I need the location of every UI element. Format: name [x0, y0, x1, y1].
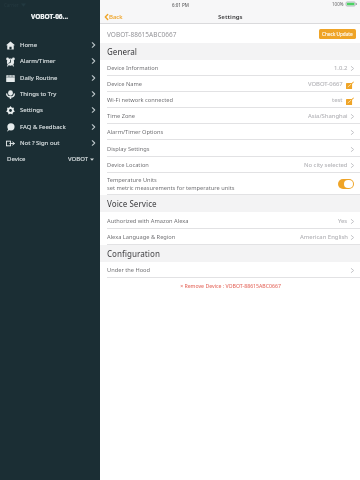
staticText: VOBOT-0667 — [308, 80, 343, 88]
button[interactable]: Device Name — [100, 76, 360, 92]
staticText: VOBOT-06... — [31, 12, 69, 21]
button[interactable]: Temperature units toggle — [338, 179, 354, 189]
staticText: Device — [7, 155, 26, 163]
staticText: Back — [109, 13, 123, 21]
staticText: Device Information — [107, 64, 159, 72]
staticText: Alarm/Timer Options — [107, 128, 164, 136]
staticText: Not ? Sign out — [20, 139, 60, 147]
staticText: Time Zone — [107, 112, 136, 120]
staticText: FAQ & Feedback — [20, 123, 66, 131]
button[interactable]: × Remove Device : VOBOT-88615ABC0667 — [100, 282, 360, 289]
staticText: Settings — [218, 13, 243, 21]
staticText: VOBOT-88615ABC0667 — [107, 30, 177, 39]
button[interactable]: Things to Try — [0, 86, 100, 102]
staticText: Device Location — [107, 161, 149, 169]
staticText: set metric measurements for temperature … — [107, 184, 235, 192]
button[interactable]: Display Settings — [100, 141, 360, 157]
staticText: Authorized with Amazon Alexa — [107, 217, 189, 225]
staticText: Alexa Language & Region — [107, 233, 176, 241]
staticText: Configuration — [107, 248, 160, 259]
staticText: Display Settings — [107, 145, 150, 153]
staticText: Voice Service — [107, 198, 157, 209]
staticText: test — [332, 96, 343, 104]
button[interactable]: Daily Routine — [0, 70, 100, 86]
staticText: No city selected — [304, 161, 348, 169]
button[interactable]: Settings — [0, 102, 100, 118]
staticText: Alarm/Timer — [20, 57, 56, 65]
staticText: Home — [20, 41, 38, 49]
button[interactable]: Home — [0, 37, 100, 53]
staticText: 100% — [332, 1, 344, 7]
staticText: Device Name — [107, 80, 143, 88]
staticText: Yes — [338, 217, 348, 225]
staticText: Temperature Units — [107, 176, 157, 184]
button[interactable]: Temperature Units — [100, 173, 360, 195]
button[interactable]: Time Zone — [100, 108, 360, 124]
button[interactable]: FAQ & Feedback — [0, 119, 100, 135]
staticText: Asia/Shanghai — [308, 112, 348, 120]
staticText: 1.0.2 — [334, 64, 348, 72]
staticText: Things to Try — [20, 90, 57, 98]
staticText: Wi-Fi network connected — [107, 96, 173, 104]
staticText: Under the Hood — [107, 266, 151, 274]
button[interactable]: Alexa Language & Region — [100, 229, 360, 245]
staticText: American English — [300, 233, 348, 241]
button[interactable]: Not ? Sign out — [0, 135, 100, 151]
staticText: Daily Routine — [20, 74, 58, 82]
button[interactable]: Device Location — [100, 157, 360, 173]
button[interactable]: Alarm/Timer Options — [100, 124, 360, 140]
button[interactable]: Wi-Fi network connected — [100, 92, 360, 108]
button[interactable]: Back — [100, 10, 127, 24]
button[interactable]: Authorized with Amazon Alexa — [100, 213, 360, 229]
button[interactable]: Under the Hood — [100, 262, 360, 278]
button[interactable]: Device — [0, 151, 100, 167]
staticText: Settings — [20, 106, 43, 114]
staticText: 6:01 PM — [172, 2, 189, 8]
staticText: VOBOT — [68, 155, 88, 163]
staticText: Check Update — [322, 31, 353, 37]
staticText: × Remove Device : VOBOT-88615ABC0667 — [180, 282, 281, 289]
button[interactable]: Alarm/Timer — [0, 53, 100, 69]
staticText: General — [107, 46, 137, 57]
button[interactable]: Device Information — [100, 60, 360, 76]
button[interactable]: Check Update — [319, 29, 356, 39]
